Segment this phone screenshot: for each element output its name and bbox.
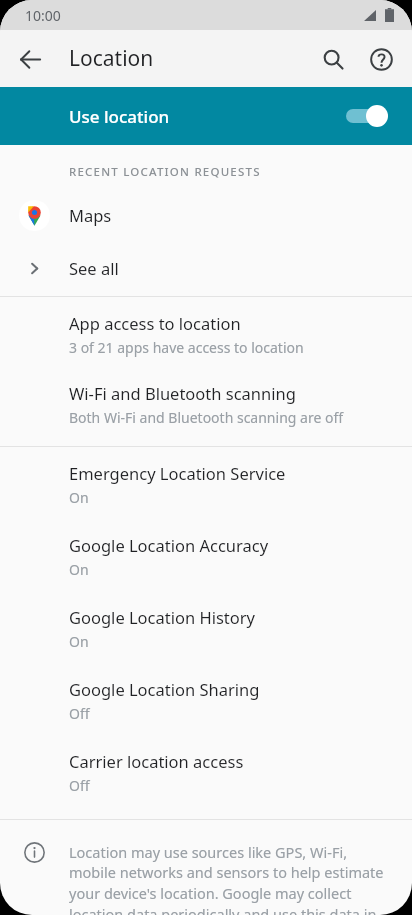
- button[interactable]: Search: [309, 35, 357, 83]
- staticText: Maps: [69, 204, 112, 226]
- button[interactable]: Google Location Sharing: [0, 651, 412, 723]
- staticText: Google Location Sharing: [69, 678, 260, 700]
- staticText: Google Location Accuracy: [69, 534, 269, 556]
- staticText: Off: [69, 776, 90, 795]
- staticText: Emergency Location Service: [69, 462, 286, 484]
- staticText: 3 of 21 apps have access to location: [69, 338, 304, 357]
- button[interactable]: Carrier location access: [0, 723, 412, 795]
- staticText: On: [69, 632, 89, 651]
- staticText: Google Location History: [69, 606, 256, 628]
- staticText: On: [69, 560, 89, 579]
- staticText: Carrier location access: [69, 750, 244, 772]
- button[interactable]: Help: [357, 35, 405, 83]
- staticText: See all: [69, 257, 119, 279]
- staticText: 10:00: [25, 6, 61, 25]
- staticText: Location may use sources like GPS, Wi-Fi…: [69, 842, 390, 915]
- button[interactable]: Google Location Accuracy: [0, 507, 412, 579]
- staticText: Both Wi-Fi and Bluetooth scanning are of…: [69, 408, 344, 427]
- staticText: App access to location: [69, 312, 241, 334]
- staticText: On: [69, 488, 89, 507]
- button[interactable]: See all: [0, 240, 412, 296]
- button[interactable]: Emergency Location Service: [0, 447, 412, 507]
- button[interactable]: Google Location History: [0, 579, 412, 651]
- button[interactable]: Maps: [0, 190, 412, 240]
- button[interactable]: Wi-Fi and Bluetooth scanning: [0, 357, 412, 427]
- button[interactable]: Back: [6, 35, 54, 83]
- button[interactable]: App access to location: [0, 297, 412, 357]
- staticText: Use location: [69, 105, 342, 128]
- button[interactable]: Use location: [0, 87, 412, 145]
- staticText: RECENT LOCATION REQUESTS: [69, 164, 261, 180]
- staticText: Off: [69, 704, 90, 723]
- staticText: Wi-Fi and Bluetooth scanning: [69, 382, 296, 404]
- staticText: Location: [69, 44, 154, 73]
